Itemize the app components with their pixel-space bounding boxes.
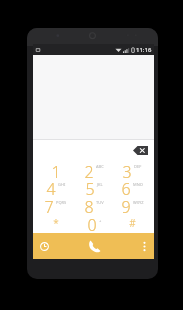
button[interactable]: Call [74,233,114,259]
staticText: TUV [96,200,104,205]
button[interactable]: 9 [113,196,151,214]
staticText: 3 [122,161,132,178]
staticText: # [129,216,136,230]
staticText: JKL [97,182,103,187]
staticText: WXYZ [133,200,144,205]
button[interactable]: 1 [36,161,75,178]
staticText: 8 [84,196,94,214]
staticText: DEF [134,164,142,169]
staticText: PQRS [56,200,67,205]
button[interactable]: # [113,214,151,232]
staticText: 0 [87,214,97,232]
staticText: * [53,216,59,230]
button[interactable]: 3 [113,161,151,178]
staticText: 7 [44,196,54,214]
staticText: GHI [58,182,66,187]
button[interactable]: 4 [36,178,75,196]
staticText: 9 [121,196,131,214]
staticText: ABC [96,164,104,169]
button[interactable]: 5 [75,178,113,196]
button[interactable]: * [36,214,75,232]
button[interactable]: 0 [75,214,113,232]
staticText: MNO [133,182,143,187]
button[interactable]: 2 [75,161,113,178]
staticText: 5 [85,178,95,196]
staticText: 4 [46,178,56,196]
button[interactable]: 8 [75,196,113,214]
button[interactable]: Backspace [133,146,148,155]
button[interactable]: More options [114,233,154,259]
staticText: 2 [84,161,94,178]
staticText: 11:16 [136,46,152,54]
button[interactable]: Call history [33,233,74,259]
button[interactable]: 6 [113,178,151,196]
button[interactable]: 7 [36,196,75,214]
staticText: 1 [51,161,61,178]
staticText: 6 [121,178,131,196]
staticText: + [99,218,102,223]
